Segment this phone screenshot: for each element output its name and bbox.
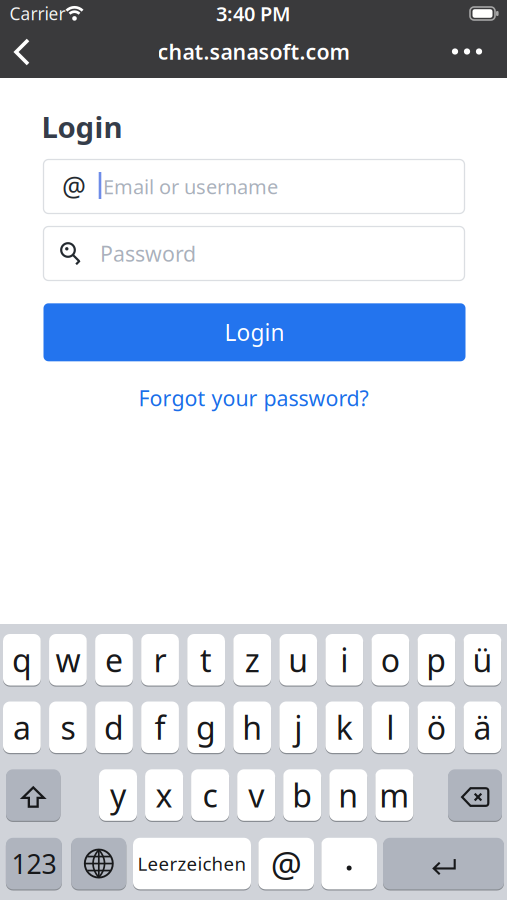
- button[interactable]: d: [95, 700, 133, 754]
- button[interactable]: Next keyboard: [71, 837, 126, 890]
- staticText: ü: [472, 638, 492, 681]
- button[interactable]: .: [321, 837, 377, 890]
- staticText: chat.sanasoft.com: [157, 37, 349, 66]
- staticText: l: [386, 706, 394, 748]
- staticText: j: [294, 706, 302, 748]
- button[interactable]: l: [371, 700, 409, 754]
- staticText: x: [156, 774, 173, 816]
- staticText: q: [12, 638, 32, 681]
- staticText: h: [242, 706, 262, 748]
- button[interactable]: Password: [43, 226, 464, 280]
- button[interactable]: e: [95, 633, 133, 686]
- staticText: d: [104, 706, 124, 748]
- staticText: ä: [473, 706, 491, 748]
- button[interactable]: m: [375, 768, 413, 822]
- staticText: g: [196, 706, 216, 748]
- staticText: b: [292, 774, 312, 816]
- staticText: u: [288, 638, 308, 681]
- button[interactable]: j: [279, 700, 317, 754]
- staticText: Carrier: [9, 2, 65, 25]
- button[interactable]: i: [325, 633, 363, 686]
- button[interactable]: b: [283, 768, 321, 822]
- button[interactable]: a: [3, 700, 41, 754]
- button[interactable]: w: [49, 633, 87, 686]
- button[interactable]: k: [325, 700, 363, 754]
- staticText: k: [336, 706, 353, 748]
- button[interactable]: u: [279, 633, 317, 686]
- button[interactable]: f: [141, 700, 179, 754]
- button[interactable]: y: [99, 768, 137, 822]
- button[interactable]: z: [233, 633, 271, 686]
- button[interactable]: q: [3, 633, 41, 686]
- button[interactable]: s: [49, 700, 87, 754]
- button[interactable]: r: [141, 633, 179, 686]
- staticText: y: [110, 774, 126, 816]
- button[interactable]: More options: [445, 36, 489, 66]
- staticText: Leerzeichen: [137, 851, 246, 876]
- staticText: t: [200, 638, 212, 681]
- button[interactable]: Forgot your password?: [138, 384, 368, 412]
- button[interactable]: Shift: [6, 768, 60, 822]
- staticText: e: [105, 638, 123, 681]
- staticText: Forgot your password?: [138, 384, 368, 412]
- button[interactable]: @: [258, 837, 314, 890]
- button[interactable]: 123: [6, 837, 62, 890]
- staticText: Login: [41, 107, 122, 146]
- staticText: a: [13, 706, 31, 748]
- button[interactable]: h: [233, 700, 271, 754]
- staticText: s: [60, 706, 75, 748]
- button[interactable]: o: [371, 633, 409, 686]
- staticText: n: [338, 774, 358, 816]
- staticText: @: [62, 169, 86, 204]
- staticText: w: [55, 638, 80, 681]
- button[interactable]: Return: [383, 837, 504, 890]
- button[interactable]: p: [417, 633, 455, 686]
- button[interactable]: ä: [463, 700, 501, 754]
- button[interactable]: t: [187, 633, 225, 686]
- button[interactable]: Login: [43, 303, 465, 361]
- staticText: p: [426, 638, 446, 681]
- button[interactable]: c: [191, 768, 229, 822]
- staticText: v: [248, 774, 264, 816]
- staticText: f: [154, 706, 165, 748]
- staticText: Password: [100, 239, 196, 268]
- button[interactable]: x: [145, 768, 183, 822]
- staticText: c: [203, 774, 218, 816]
- button[interactable]: v: [237, 768, 275, 822]
- staticText: i: [340, 638, 348, 681]
- button[interactable]: n: [329, 768, 367, 822]
- staticText: o: [381, 638, 400, 681]
- button[interactable]: g: [187, 700, 225, 754]
- staticText: r: [153, 638, 166, 681]
- staticText: z: [245, 638, 260, 681]
- button[interactable]: Leerzeichen: [133, 837, 251, 890]
- staticText: Login: [224, 317, 284, 347]
- staticText: m: [379, 774, 409, 816]
- staticText: Email or username: [103, 173, 278, 200]
- button[interactable]: ö: [417, 700, 455, 754]
- staticText: 123: [11, 846, 56, 881]
- button[interactable]: Back: [12, 37, 34, 67]
- button[interactable]: ü: [463, 633, 501, 686]
- staticText: @: [271, 840, 302, 886]
- button[interactable]: Email or username: [43, 159, 464, 213]
- staticText: ö: [427, 706, 446, 748]
- staticText: 3:40 PM: [216, 0, 291, 27]
- button[interactable]: Delete: [448, 768, 502, 822]
